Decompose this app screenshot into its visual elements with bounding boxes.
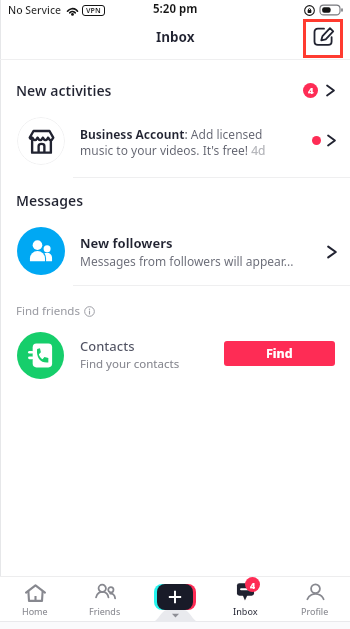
button[interactable]: Profile xyxy=(280,576,350,621)
staticText: Contacts xyxy=(80,337,135,355)
staticText: Messages xyxy=(16,191,84,210)
button[interactable]: Create xyxy=(140,576,210,621)
staticText: New activities xyxy=(16,81,112,100)
button[interactable]: New activities xyxy=(0,75,350,105)
button[interactable]: Home xyxy=(0,576,70,621)
button[interactable]: New followers xyxy=(0,220,350,286)
staticText: Find xyxy=(266,345,293,362)
staticText: Find friends xyxy=(16,303,80,319)
button[interactable]: 4 xyxy=(210,576,280,621)
staticText: VPN xyxy=(86,6,101,16)
button[interactable]: Find xyxy=(224,341,335,366)
staticText: No Service xyxy=(8,3,62,17)
staticText: Profile xyxy=(301,605,329,617)
button[interactable]: Business Account: Add licensed music to … xyxy=(0,105,350,178)
staticText: Friends xyxy=(89,605,121,617)
staticText: 5:20 pm xyxy=(153,1,198,17)
staticText: 4 xyxy=(250,579,256,591)
staticText: 4 xyxy=(308,84,314,97)
button[interactable]: Friends xyxy=(70,576,140,621)
staticText: Business Account: Add licensed music to … xyxy=(80,126,268,158)
staticText: Messages from followers will appear... xyxy=(80,253,294,269)
staticText: Inbox xyxy=(233,605,258,617)
staticText: Home xyxy=(22,605,48,617)
staticText: Inbox xyxy=(156,28,195,46)
button[interactable]: Compose new message xyxy=(303,19,343,58)
staticText: New followers xyxy=(80,234,173,252)
staticText: Find your contacts xyxy=(80,356,180,372)
